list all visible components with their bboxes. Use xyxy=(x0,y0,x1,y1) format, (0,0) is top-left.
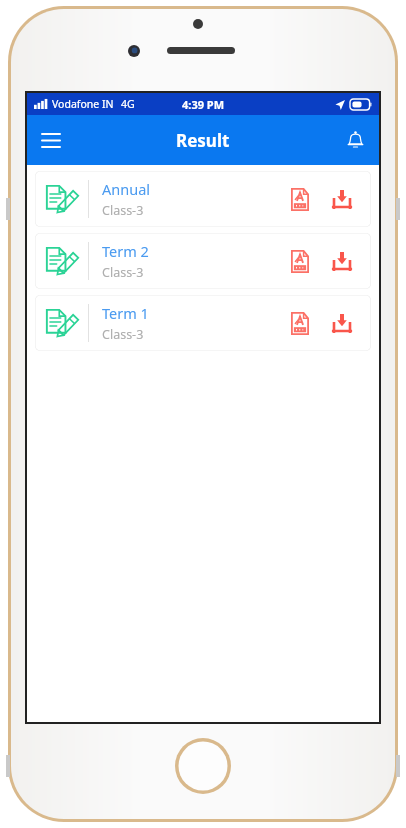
button[interactable]: View PDF xyxy=(283,179,317,219)
staticText: Term 1 xyxy=(102,303,149,323)
staticText: Vodafone IN xyxy=(52,97,114,111)
button[interactable]: Open navigation menu xyxy=(27,116,75,164)
button[interactable]: Download xyxy=(325,241,359,281)
staticText: Result xyxy=(176,129,230,152)
button[interactable]: Notifications xyxy=(331,116,379,164)
staticText: Annual xyxy=(102,179,151,199)
button[interactable]: Download xyxy=(325,179,359,219)
staticText: Class-3 xyxy=(102,202,144,219)
staticText: Class-3 xyxy=(102,326,144,343)
button[interactable]: Term 1 xyxy=(35,295,371,351)
button[interactable]: Term 2 xyxy=(35,233,371,289)
button[interactable]: Annual xyxy=(35,171,371,227)
staticText: 4:39 PM xyxy=(182,97,225,112)
staticText: Class-3 xyxy=(102,264,144,281)
button[interactable]: View PDF xyxy=(283,241,317,281)
staticText: 4G xyxy=(121,97,135,111)
button[interactable]: Download xyxy=(325,303,359,343)
staticText: Term 2 xyxy=(102,241,149,261)
button[interactable]: View PDF xyxy=(283,303,317,343)
other: Home xyxy=(175,738,231,794)
